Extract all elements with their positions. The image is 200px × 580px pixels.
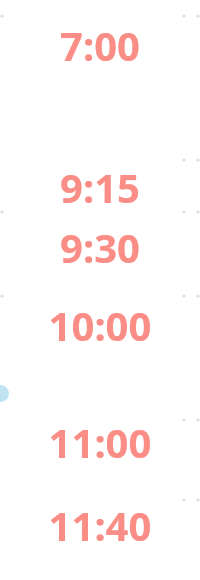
staticText: 10:00 [0, 298, 200, 350]
button[interactable]: 11:00 [0, 415, 200, 467]
other: Scroll position [0, 0, 200, 580]
staticText: 11:00 [0, 415, 200, 467]
button[interactable]: 9:30 [0, 220, 200, 272]
staticText: 11:40 [0, 498, 200, 550]
button[interactable]: 11:40 [0, 498, 200, 550]
button[interactable]: 9:15 [0, 160, 200, 212]
button[interactable]: 7:00 [0, 18, 200, 70]
staticText: 9:30 [0, 220, 200, 272]
staticText: 9:15 [0, 160, 200, 212]
staticText: 7:00 [0, 18, 200, 70]
button[interactable]: 10:00 [0, 298, 200, 350]
